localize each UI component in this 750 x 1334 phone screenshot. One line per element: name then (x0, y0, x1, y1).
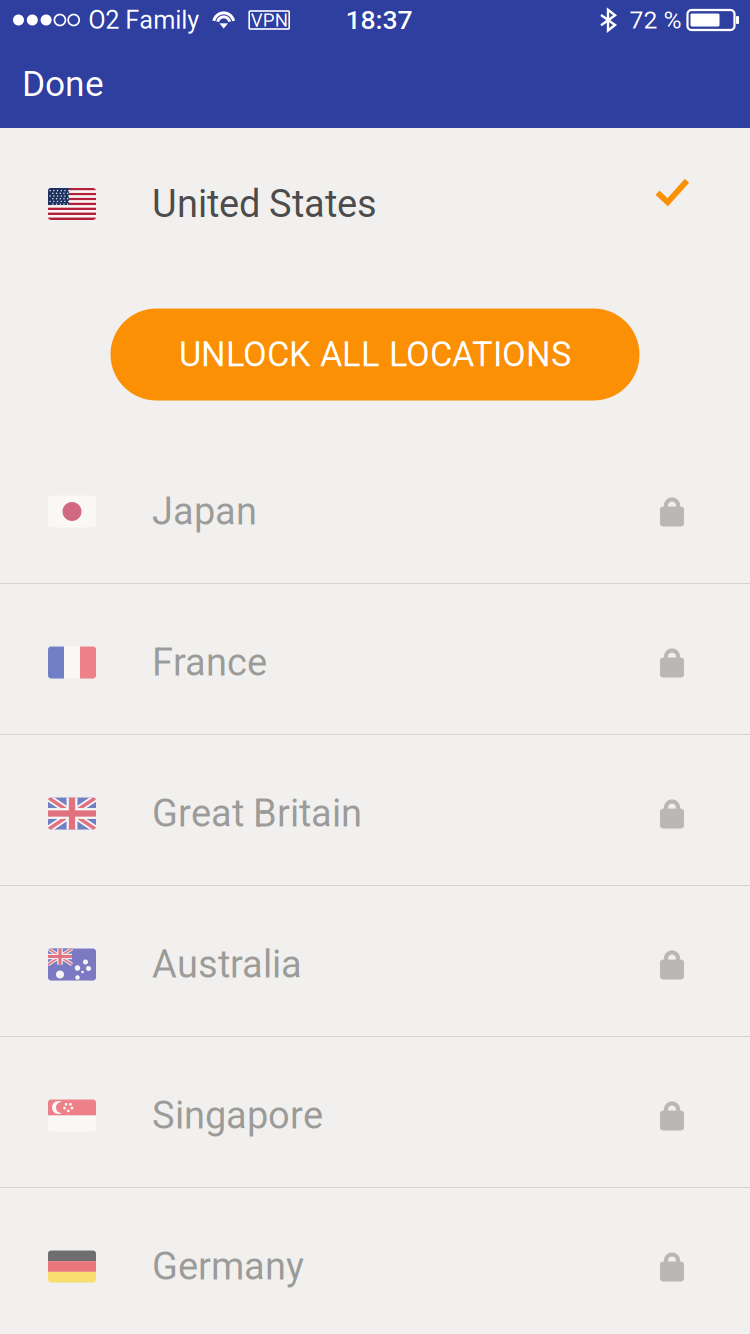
staticText: Japan (152, 489, 257, 534)
staticText: 18:37 (345, 4, 412, 36)
button[interactable]: Singapore (0, 1037, 750, 1187)
button[interactable]: Germany (0, 1188, 750, 1334)
staticText: Australia (152, 942, 302, 987)
staticText: United States (152, 182, 377, 226)
staticText: Great Britain (152, 791, 362, 836)
button[interactable]: Great Britain (0, 735, 750, 885)
button[interactable]: France (0, 584, 750, 734)
staticText: Done (22, 63, 104, 105)
staticText: Singapore (152, 1093, 323, 1138)
staticText: VPN (251, 9, 288, 31)
staticText: O2 Family (88, 5, 199, 35)
button[interactable]: Japan (0, 433, 750, 583)
staticText: UNLOCK ALL LOCATIONS (179, 334, 571, 375)
button[interactable]: Australia (0, 886, 750, 1036)
button[interactable]: UNLOCK ALL LOCATIONS (110, 308, 639, 400)
staticText: 72 % (629, 5, 681, 34)
button[interactable]: United States (0, 128, 750, 280)
button[interactable]: Done (0, 54, 126, 114)
staticText: France (152, 640, 267, 685)
staticText: Germany (152, 1244, 304, 1289)
